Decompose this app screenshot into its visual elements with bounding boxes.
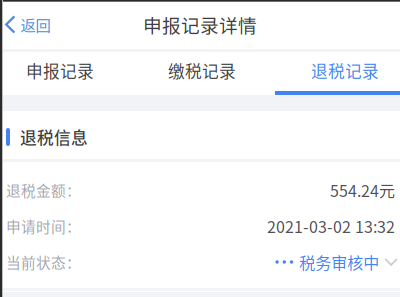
button[interactable]: 退税记录 [290, 52, 400, 95]
staticText: 当前状态： [6, 251, 81, 273]
staticText: 缴税记录 [168, 58, 236, 82]
staticText: 退税金额： [6, 179, 81, 201]
button[interactable]: 返回 [0, 0, 61, 49]
staticText: 申报记录 [26, 58, 94, 82]
staticText: 退税信息 [20, 125, 88, 149]
staticText: 554.24元 [330, 178, 395, 202]
staticText: 申报记录详情 [143, 11, 257, 38]
button[interactable]: 缴税记录 [120, 52, 290, 95]
staticText: 税务审核中 [299, 250, 379, 274]
button[interactable]: 申报记录 [0, 52, 120, 95]
staticText: 返回 [21, 13, 51, 36]
button[interactable]: 当前状态： [0, 244, 400, 280]
staticText: 2021-03-02 13:32 [267, 214, 395, 238]
staticText: 退税记录 [311, 58, 379, 82]
staticText: 申请时间： [6, 215, 81, 237]
